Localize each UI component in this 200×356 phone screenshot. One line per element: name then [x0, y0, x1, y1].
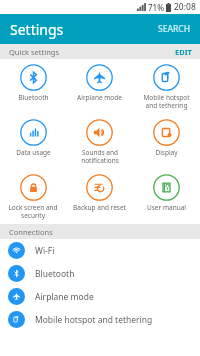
- staticText: Backup and reset: [73, 203, 126, 212]
- button[interactable]: SEARCH: [149, 17, 200, 41]
- staticText: Bluetooth: [18, 93, 49, 102]
- staticText: SEARCH: [158, 23, 191, 35]
- staticText: Airplane mode: [77, 93, 122, 102]
- button[interactable]: Bluetooth: [0, 59, 66, 114]
- staticText: EDIT: [175, 47, 192, 56]
- staticText: Settings: [10, 20, 64, 39]
- staticText: Bluetooth: [35, 268, 75, 280]
- staticText: Connections: [9, 227, 53, 237]
- button[interactable]: Airplane mode: [66, 59, 133, 114]
- staticText: Wi-Fi: [35, 245, 55, 257]
- staticText: 71%: [148, 2, 164, 13]
- button[interactable]: Lock screen and security: [0, 169, 66, 224]
- staticText: Quick settings: [9, 47, 59, 57]
- button[interactable]: Bluetooth: [0, 262, 200, 285]
- staticText: Sounds and notifications: [81, 148, 119, 165]
- staticText: User manual: [147, 203, 186, 212]
- button[interactable]: Display: [133, 114, 200, 169]
- staticText: 20:08: [174, 1, 196, 13]
- staticText: Mobile hotspot and tethering: [35, 314, 153, 326]
- staticText: Airplane mode: [35, 291, 94, 303]
- staticText: Mobile hotspot and tethering: [143, 93, 190, 110]
- button[interactable]: User manual: [133, 169, 200, 224]
- staticText: Data usage: [16, 148, 51, 157]
- staticText: Display: [155, 148, 178, 157]
- button[interactable]: EDIT: [167, 44, 200, 59]
- button[interactable]: Airplane mode: [0, 285, 200, 308]
- button[interactable]: Mobile hotspot and tethering: [0, 308, 200, 331]
- staticText: Lock screen and security: [8, 203, 58, 220]
- button[interactable]: Backup and reset: [66, 169, 133, 224]
- button[interactable]: Mobile hotspot and tethering: [133, 59, 200, 114]
- button[interactable]: Sounds and notifications: [66, 114, 133, 169]
- button[interactable]: Data usage: [0, 114, 66, 169]
- button[interactable]: Wi-Fi: [0, 239, 200, 262]
